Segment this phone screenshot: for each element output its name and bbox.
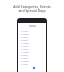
button[interactable] (21, 57, 44, 60)
button[interactable] (21, 48, 44, 51)
button[interactable] (21, 30, 44, 33)
button[interactable] (21, 54, 44, 57)
button[interactable] (33, 67, 35, 69)
button[interactable] (21, 63, 44, 66)
button[interactable] (21, 42, 44, 45)
button[interactable] (21, 45, 44, 48)
button[interactable] (21, 39, 44, 42)
button[interactable] (21, 51, 44, 54)
button[interactable] (21, 60, 44, 63)
staticText: Add Categories, Events and Special Days (13, 4, 51, 13)
button[interactable] (21, 33, 44, 36)
button[interactable] (21, 36, 44, 39)
